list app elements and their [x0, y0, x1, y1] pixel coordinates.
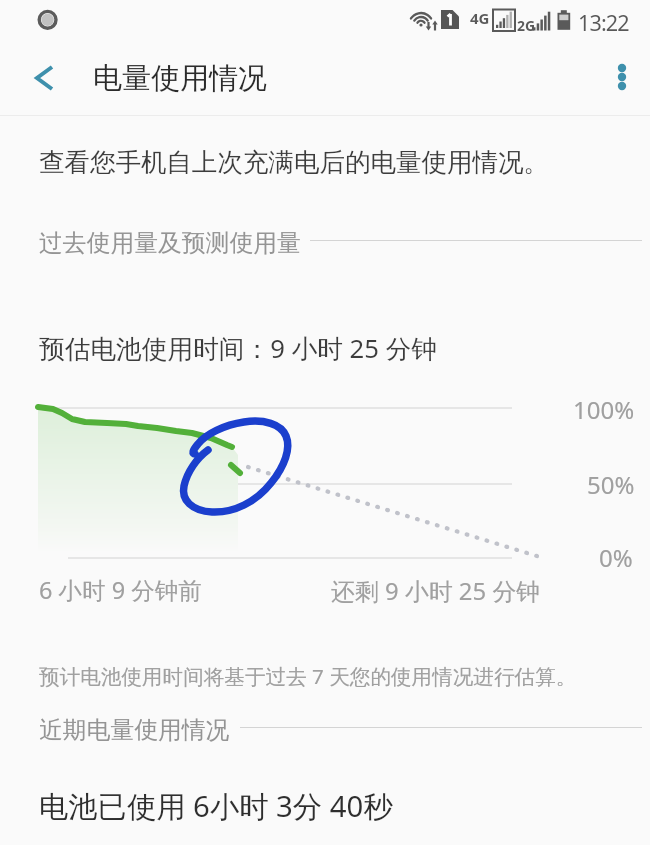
staticText: 查看您手机自上次充满电后的电量使用情况。 — [39, 146, 549, 178]
staticText: 电量使用情况 — [93, 60, 267, 97]
staticText: 50% — [587, 468, 635, 501]
staticText: 近期电量使用情况 — [39, 715, 230, 745]
staticText: 预计电池使用时间将基于过去 7 天您的使用情况进行估算。 — [39, 662, 577, 690]
staticText: 2G — [517, 16, 536, 35]
staticText: 0% — [599, 541, 633, 574]
staticText: 4G — [470, 8, 490, 28]
button[interactable]: More options — [596, 51, 648, 103]
button[interactable]: 电池已使用 6小时 3分 40秒 — [0, 760, 650, 845]
staticText: 13:22 — [578, 8, 629, 37]
button[interactable]: Back — [16, 50, 72, 106]
staticText: 过去使用量及预测使用量 — [39, 228, 301, 258]
staticText: 电池已使用 6小时 3分 40秒 — [39, 786, 393, 826]
staticText: 还剩 9 小时 25 分钟 — [331, 574, 541, 607]
staticText: 100% — [573, 393, 635, 426]
staticText: 6 小时 9 分钟前 — [39, 574, 202, 606]
staticText: 预估电池使用时间：9 小时 25 分钟 — [39, 331, 438, 366]
